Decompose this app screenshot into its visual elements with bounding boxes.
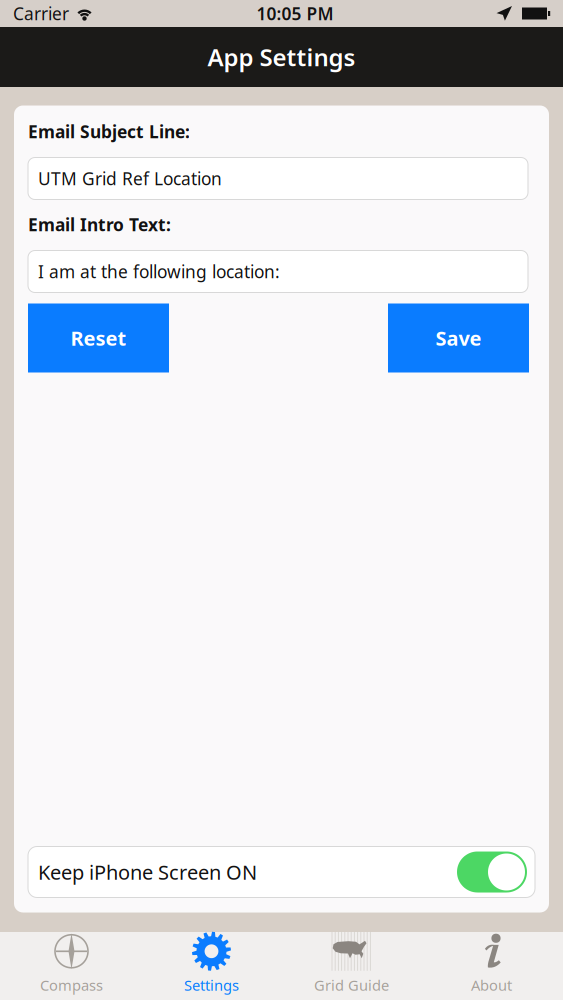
staticText: Grid Guide [314,975,389,995]
button[interactable]: I am at the following location: [28,250,528,292]
staticText: Carrier [13,2,69,25]
staticText: UTM Grid Ref Location [38,167,222,190]
button[interactable]: Grid Guide [281,932,421,1000]
staticText: Keep iPhone Screen ON [38,859,257,885]
button[interactable]: Save [388,303,529,372]
staticText: I am at the following location: [38,260,280,283]
button[interactable]: Compass [1,932,141,1000]
staticText: Save [435,325,481,351]
staticText: App Settings [207,41,355,73]
staticText: Email Intro Text: [28,213,171,236]
staticText: Settings [184,975,239,995]
button[interactable]: Reset [28,303,169,372]
button[interactable]: Settings [141,932,281,1000]
staticText: 10:05 PM [256,2,333,25]
button[interactable]: UTM Grid Ref Location [28,157,528,199]
button[interactable]: About [421,932,561,1000]
staticText: Email Subject Line: [28,120,190,143]
staticText: Reset [70,325,126,351]
staticText: About [471,975,512,995]
button[interactable]: Keep iPhone Screen ON [28,846,535,897]
staticText: Compass [40,975,103,995]
